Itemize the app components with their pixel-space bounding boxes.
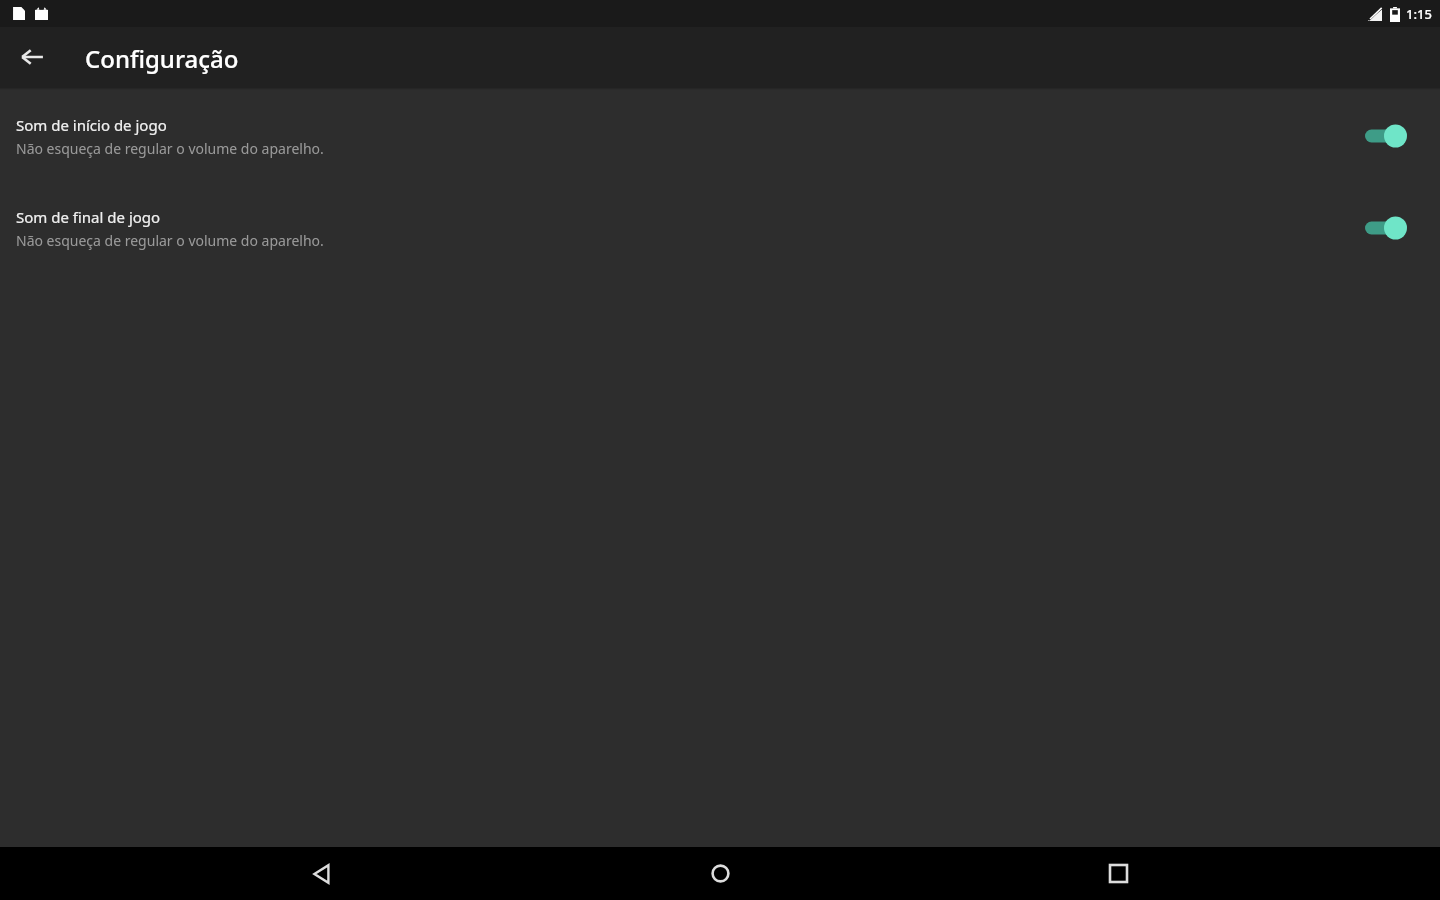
staticText: Som de início de jogo — [16, 115, 167, 135]
button[interactable]: Back — [10, 35, 54, 79]
staticText: Som de final de jogo — [16, 207, 161, 227]
button[interactable]: Toggle sound — [1360, 119, 1412, 153]
staticText: 1:15 — [1406, 5, 1432, 23]
button[interactable]: Som de início de jogo — [0, 109, 1440, 163]
button[interactable]: Toggle sound — [1360, 211, 1412, 245]
staticText: Configuração — [85, 42, 239, 75]
staticText: Não esqueça de regular o volume do apare… — [16, 139, 324, 158]
button[interactable]: Som de final de jogo — [0, 201, 1440, 255]
button[interactable]: Back — [290, 847, 354, 900]
button[interactable]: Home — [688, 847, 752, 900]
staticText: Não esqueça de regular o volume do apare… — [16, 231, 324, 250]
button[interactable]: Recent apps — [1086, 847, 1150, 900]
